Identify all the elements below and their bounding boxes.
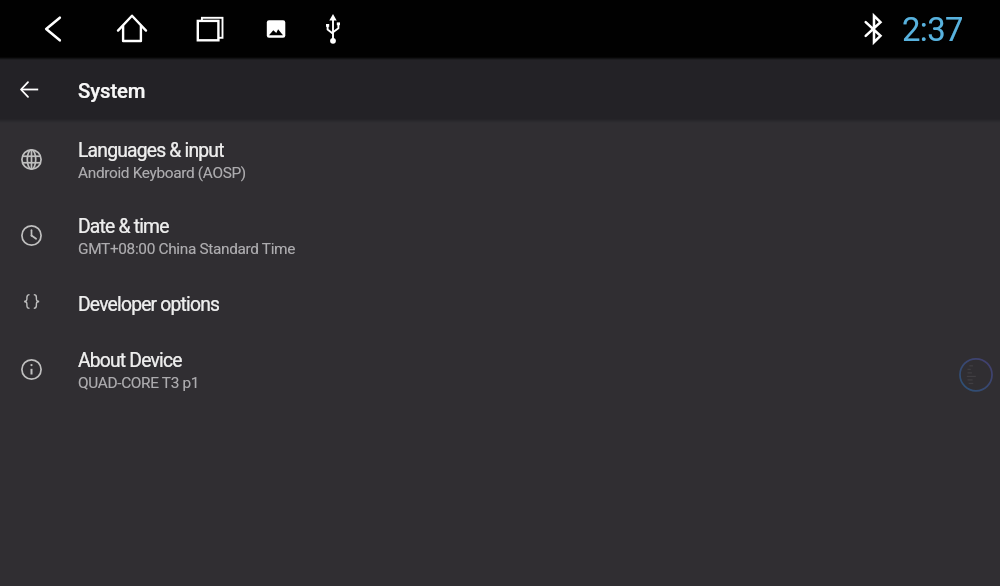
staticText: 2:37: [902, 11, 963, 49]
button[interactable]: About Device: [0, 331, 1000, 407]
staticText: Android Keyboard (AOSP): [78, 164, 246, 182]
staticText: QUAD-CORE T3 p1: [78, 374, 200, 392]
staticText: System: [78, 79, 146, 103]
button[interactable]: Navigate up: [0, 58, 58, 121]
staticText: About Device: [78, 349, 182, 372]
button[interactable]: Date & time: [0, 197, 1000, 273]
button[interactable]: Back: [36, 12, 70, 46]
staticText: Date & time: [78, 215, 169, 238]
button[interactable]: Bluetooth: [858, 13, 890, 45]
staticText: Languages & input: [78, 139, 224, 162]
button[interactable]: USB: [316, 12, 350, 46]
button[interactable]: Screenshot: [261, 14, 291, 44]
button[interactable]: Languages & input: [0, 121, 1000, 197]
button[interactable]: Developer options: [0, 274, 1000, 328]
button[interactable]: 2:37: [902, 11, 963, 49]
button[interactable]: Home: [115, 12, 149, 46]
staticText: GMT+08:00 China Standard Time: [78, 240, 296, 258]
button[interactable]: Recent apps: [193, 12, 227, 46]
staticText: Developer options: [78, 293, 220, 316]
